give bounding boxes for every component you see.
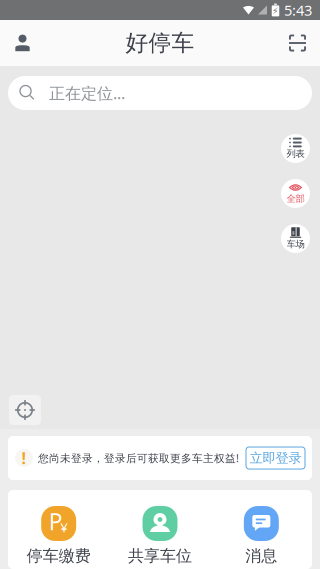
button[interactable]: 正在定位... [8,76,312,110]
staticText: 共享车位 [128,546,192,566]
staticText: ¥ [60,518,68,536]
button[interactable]: 共享车位 [109,506,211,566]
staticText: 停车缴费 [27,546,91,566]
staticText: 正在定位... [49,82,125,104]
button[interactable]: 消息 [211,506,312,566]
button[interactable]: 立即登录 [246,447,305,469]
staticText: 车场 [286,238,304,250]
staticText: ! [21,447,26,469]
button[interactable]: 定位 [9,395,41,425]
button[interactable]: 个人中心 [0,20,45,66]
button[interactable]: 车场 [281,224,310,253]
button[interactable]: P [8,506,109,566]
staticText: 消息 [245,546,277,566]
button[interactable]: 列表 [281,134,310,163]
staticText: 5:43 [284,0,312,20]
staticText: 立即登录 [249,450,301,466]
staticText: 您尚未登录，登录后可获取更多车主权益! [38,451,239,465]
staticText: 好停车 [125,29,194,57]
staticText: ⚡︎ [272,6,279,16]
staticText: 全部 [286,193,304,204]
button[interactable]: 全部 [281,179,310,208]
staticText: 列表 [286,148,304,159]
staticText: P [49,506,63,536]
button[interactable]: 扫一扫 [275,20,320,66]
